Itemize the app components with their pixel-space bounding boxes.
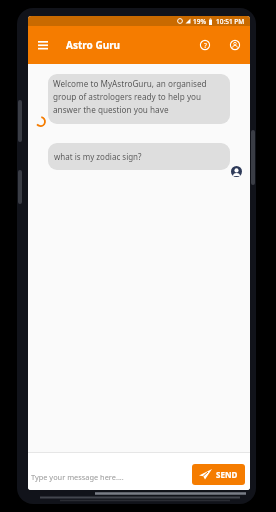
staticText: 19% [193,17,206,26]
button[interactable]: Type your message here.... [28,452,250,490]
staticText: Welcome to MyAstroGuru, an organised gro… [53,78,207,116]
staticText: 10:51 PM [216,17,245,26]
staticText: what is my zodiac sign? [54,151,142,162]
staticText: SEND [216,469,238,480]
button[interactable]: ? [193,33,217,57]
staticText: ? [204,41,207,50]
button[interactable] [223,33,247,57]
button[interactable] [28,26,58,64]
staticText: Astro Guru [66,38,121,52]
button[interactable]: SEND [192,464,245,485]
staticText: Type your message here.... [31,472,124,482]
